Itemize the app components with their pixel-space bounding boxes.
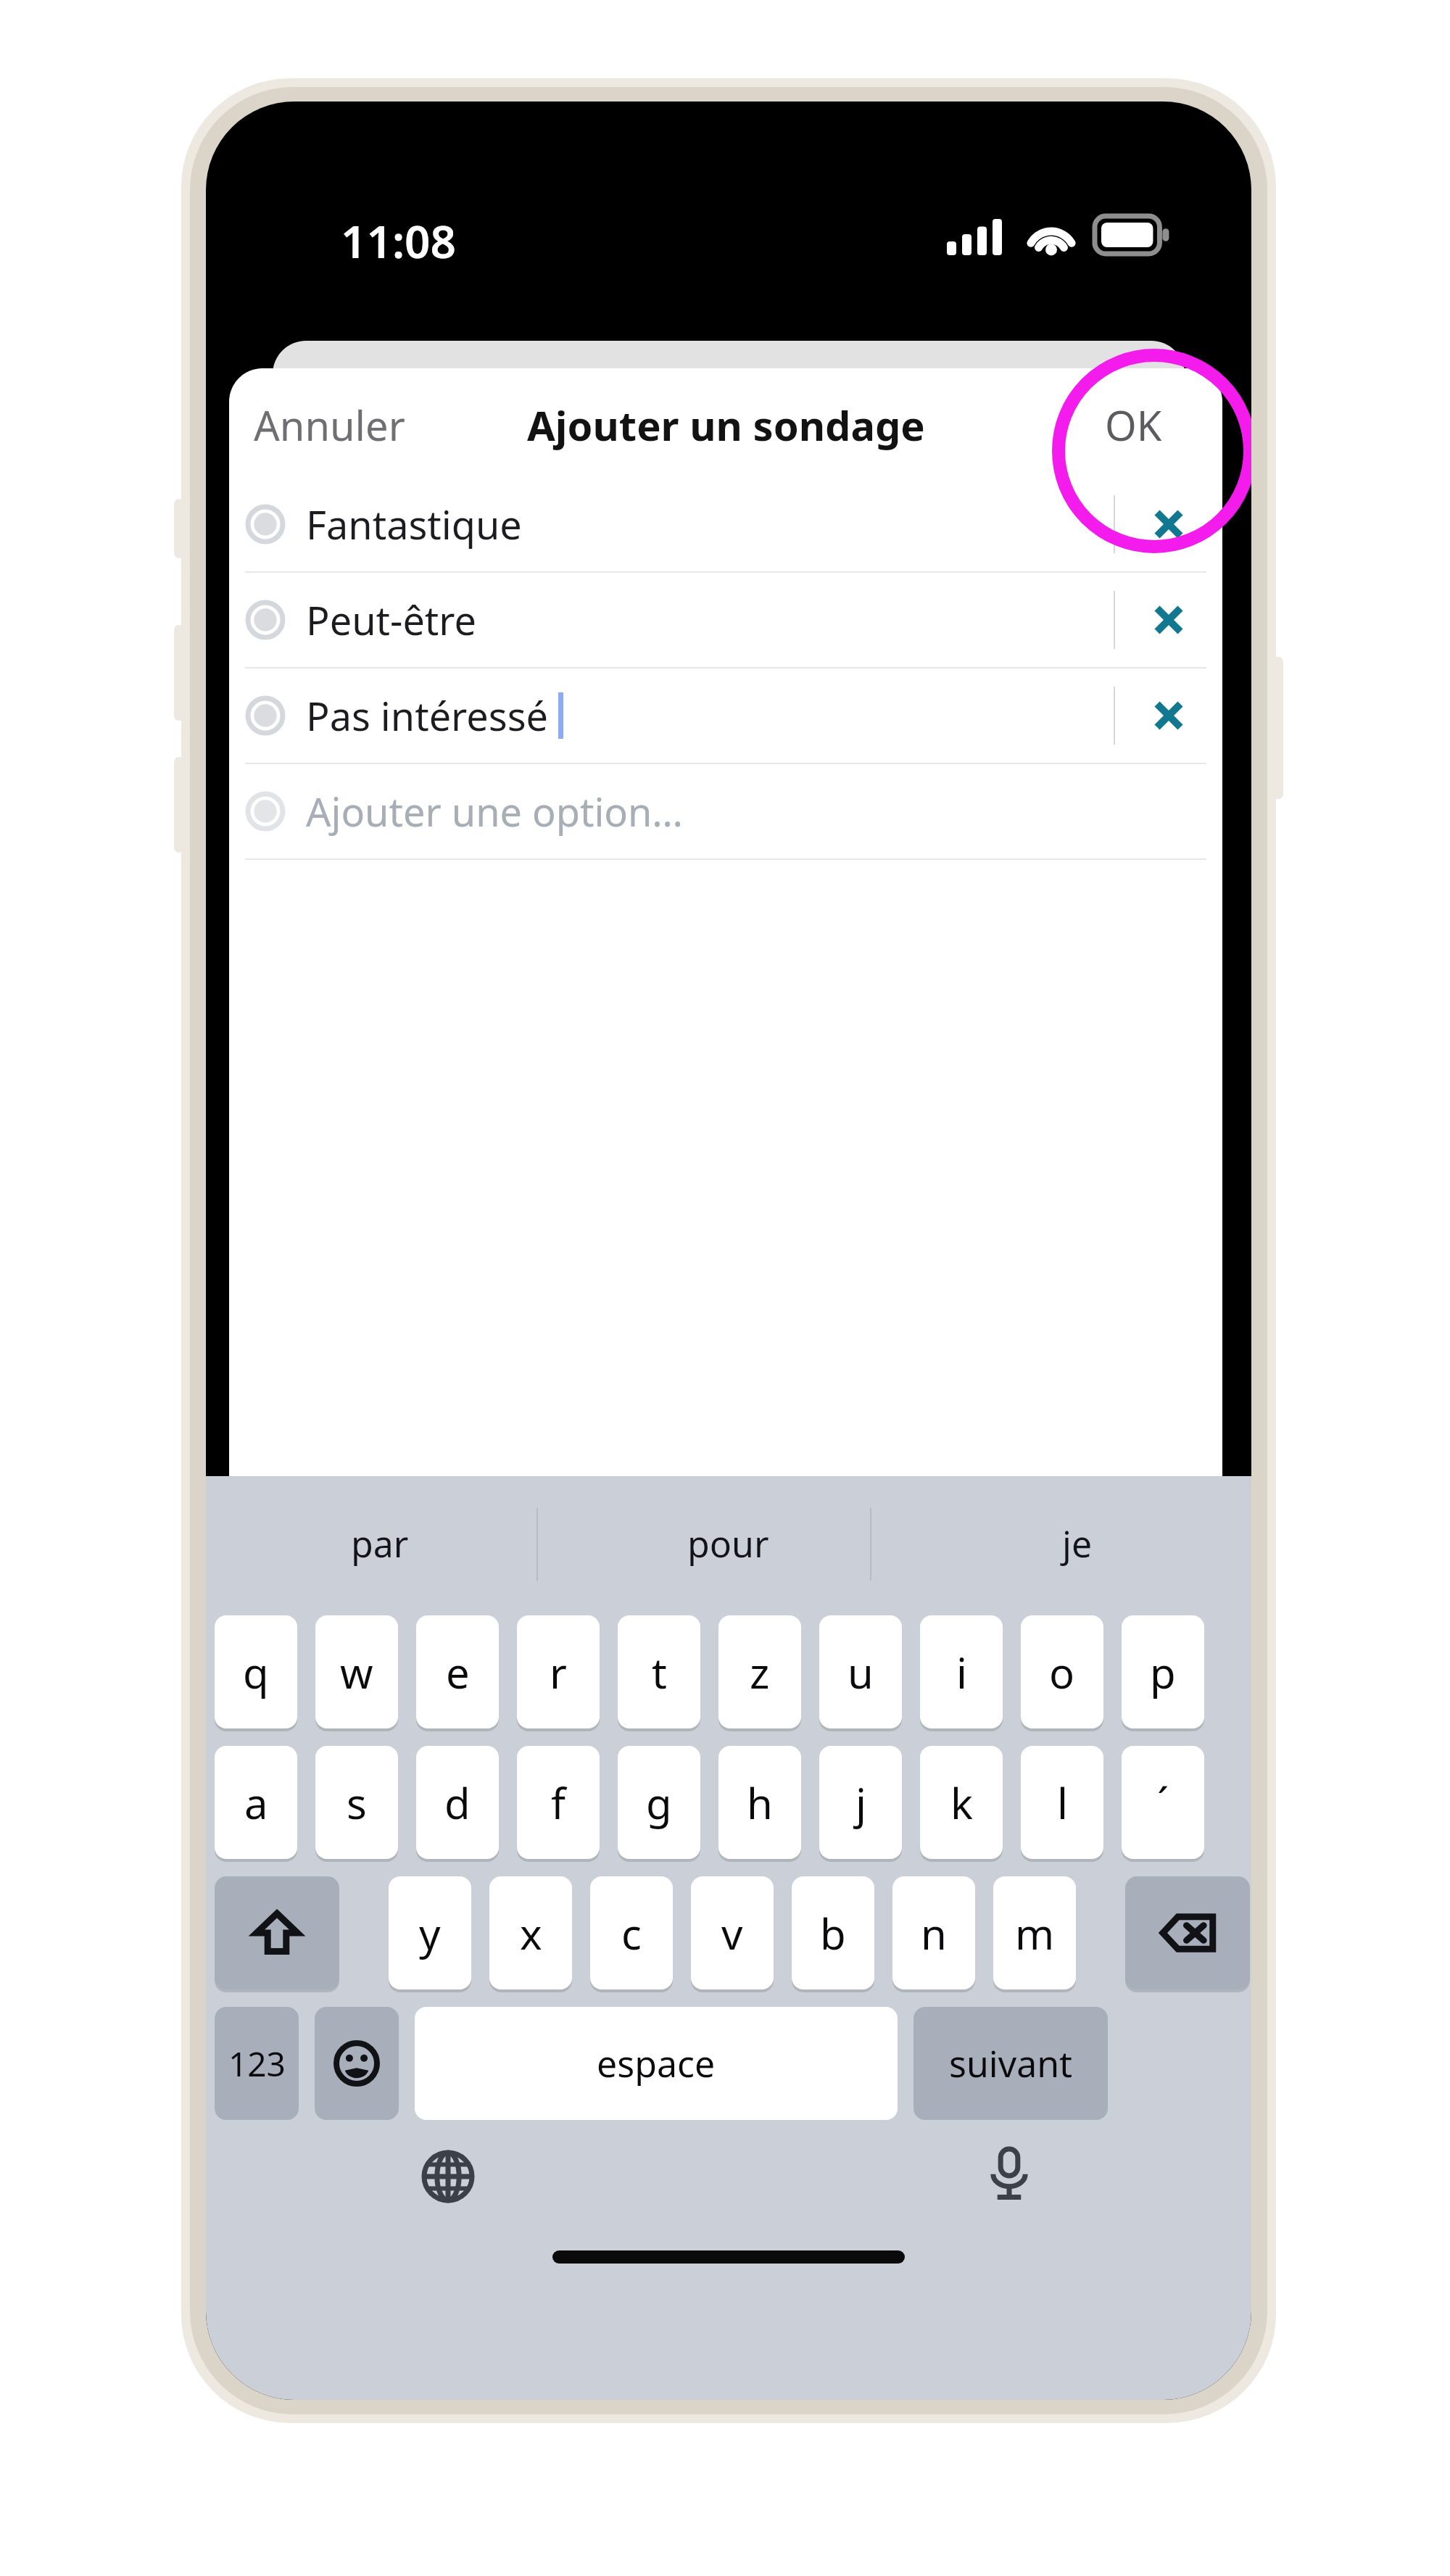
button[interactable]: Pas intéressé [229, 668, 1222, 763]
staticText: f [551, 1774, 565, 1831]
button[interactable]: n [892, 1876, 975, 1989]
button[interactable]: espace [415, 2007, 898, 2120]
button[interactable]: c [590, 1876, 673, 1989]
staticText: r [550, 1644, 567, 1701]
staticText: g [646, 1774, 672, 1831]
button[interactable]: g [618, 1746, 700, 1859]
staticText: je [1062, 1519, 1093, 1568]
staticText: c [621, 1905, 642, 1962]
staticText: u [848, 1644, 874, 1701]
staticText: w [340, 1644, 373, 1701]
staticText: OK [1105, 397, 1162, 452]
button[interactable]: d [416, 1746, 499, 1859]
staticText: suivant [949, 2039, 1073, 2088]
button[interactable]: f [517, 1746, 600, 1859]
staticText: Peut-être [306, 593, 477, 647]
button[interactable]: a [215, 1746, 297, 1859]
button[interactable]: Supprimer l'option [1115, 668, 1222, 763]
button[interactable]: x [489, 1876, 572, 1989]
staticText: Ajouter un sondage [527, 397, 925, 452]
button[interactable]: s [315, 1746, 398, 1859]
staticText: ´ [1157, 1774, 1169, 1831]
staticText: y [419, 1905, 441, 1962]
staticText: Fantastique [306, 497, 522, 551]
staticText: 123 [228, 2041, 286, 2087]
staticText: v [721, 1905, 743, 1962]
staticText: Ajouter une option… [306, 784, 684, 838]
button[interactable]: y [389, 1876, 471, 1989]
button[interactable]: Ajouter une option… [229, 764, 1222, 858]
button[interactable]: par [206, 1476, 554, 1611]
button[interactable]: j [819, 1746, 902, 1859]
staticText: n [921, 1905, 947, 1962]
staticText: q [243, 1644, 269, 1701]
button[interactable]: w [315, 1615, 398, 1728]
button[interactable]: Dictée vocale [982, 2146, 1037, 2201]
staticText: pour [687, 1519, 769, 1568]
button[interactable]: ´ [1122, 1746, 1204, 1859]
button[interactable]: OK [1089, 386, 1178, 464]
button[interactable]: Annuler [241, 386, 418, 464]
staticText: Annuler [254, 397, 405, 452]
button[interactable]: Effacer [1125, 1876, 1250, 1989]
staticText: a [244, 1774, 268, 1831]
button[interactable]: suivant [913, 2007, 1108, 2120]
staticText: 11:08 [341, 210, 456, 271]
staticText: l [1057, 1774, 1068, 1831]
button[interactable]: 123 [215, 2007, 299, 2120]
button[interactable]: u [819, 1615, 902, 1728]
button[interactable]: l [1021, 1746, 1103, 1859]
staticText: x [520, 1905, 542, 1962]
staticText: m [1015, 1905, 1055, 1962]
staticText: j [855, 1774, 866, 1831]
button[interactable]: v [691, 1876, 774, 1989]
staticText: i [956, 1644, 967, 1701]
staticText: s [347, 1774, 367, 1831]
button[interactable]: e [416, 1615, 499, 1728]
staticText: e [446, 1644, 470, 1701]
button[interactable]: m [993, 1876, 1076, 1989]
button[interactable]: Emoji [315, 2007, 399, 2120]
button[interactable]: i [920, 1615, 1003, 1728]
button[interactable]: k [920, 1746, 1003, 1859]
button[interactable]: Peut-être [229, 573, 1222, 667]
staticText: h [747, 1774, 773, 1831]
button[interactable]: Supprimer l'option [1115, 573, 1222, 667]
button[interactable]: p [1122, 1615, 1204, 1728]
button[interactable]: r [517, 1615, 600, 1728]
button[interactable]: Majuscule [215, 1876, 339, 1989]
button[interactable]: Supprimer l'option [1115, 477, 1222, 571]
staticText: o [1049, 1644, 1075, 1701]
button[interactable]: Changer de clavier [420, 2149, 476, 2204]
staticText: z [750, 1644, 770, 1701]
staticText: p [1150, 1644, 1176, 1701]
button[interactable]: z [718, 1615, 801, 1728]
button[interactable]: o [1021, 1615, 1103, 1728]
button[interactable]: je [903, 1476, 1251, 1611]
staticText: Pas intéressé [306, 689, 548, 742]
button[interactable]: Fantastique [229, 477, 1222, 571]
staticText: par [351, 1519, 409, 1568]
staticText: t [652, 1644, 667, 1701]
staticText: d [444, 1774, 471, 1831]
staticText: b [820, 1905, 846, 1962]
button[interactable]: q [215, 1615, 297, 1728]
button[interactable]: t [618, 1615, 700, 1728]
button[interactable]: h [718, 1746, 801, 1859]
staticText: espace [597, 2039, 716, 2088]
staticText: k [950, 1774, 973, 1831]
button[interactable]: pour [554, 1476, 903, 1611]
button[interactable]: b [792, 1876, 874, 1989]
